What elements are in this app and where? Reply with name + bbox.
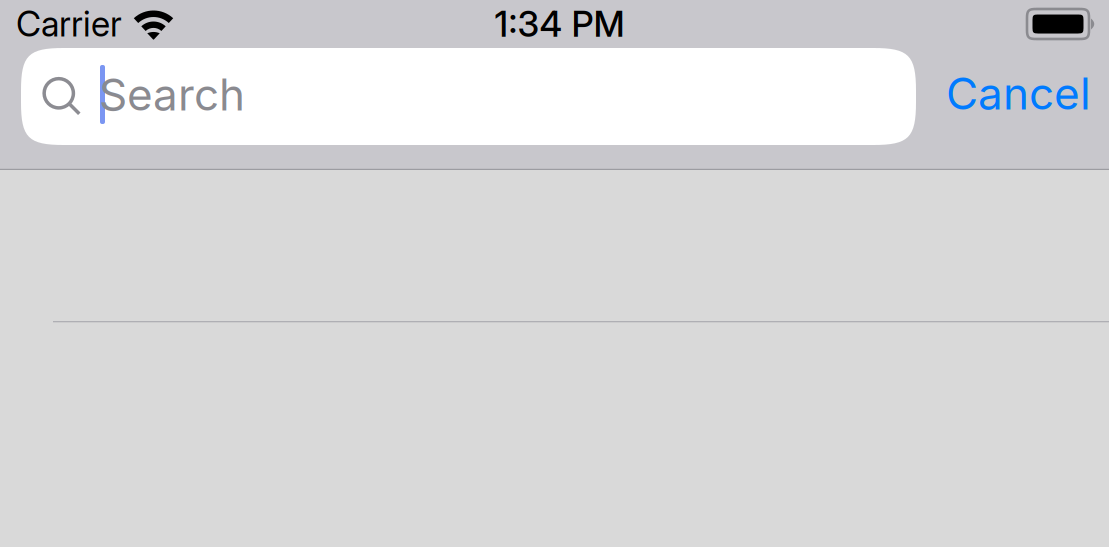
staticText: Carrier [16,3,122,45]
staticText: 1:34 PM [494,3,624,45]
staticText: Cancel [946,67,1091,120]
button[interactable]: Cancel [930,48,1107,145]
button[interactable]: Search [21,48,916,145]
staticText: Search [99,68,245,121]
